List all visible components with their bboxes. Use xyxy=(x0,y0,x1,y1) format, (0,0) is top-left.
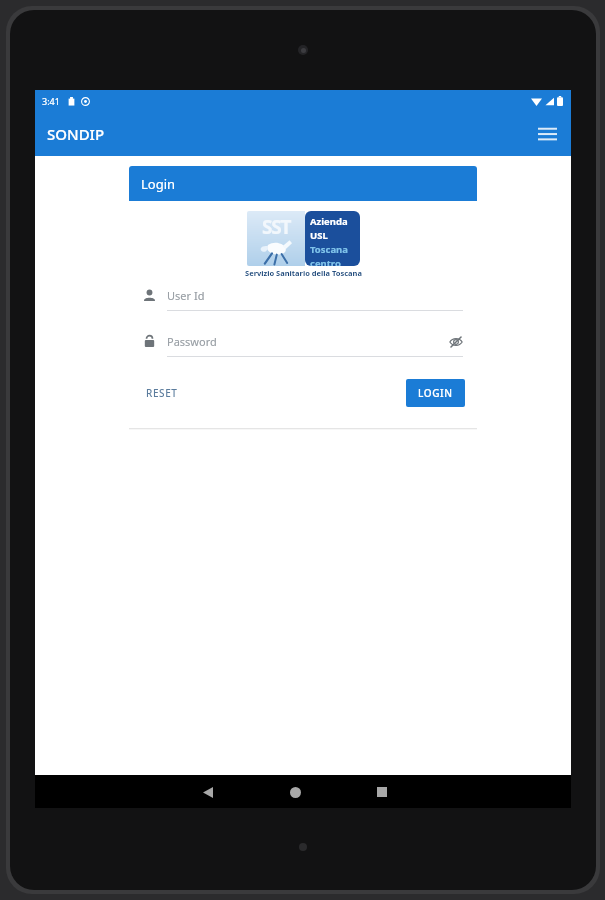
staticText: Password xyxy=(167,334,217,349)
button[interactable]: LOGIN xyxy=(406,379,465,407)
button[interactable]: Recent apps xyxy=(369,779,395,805)
staticText: RESET xyxy=(146,386,178,400)
staticText: SONDIP xyxy=(47,124,105,144)
button[interactable]: SONDIP xyxy=(43,120,109,148)
button[interactable]: RESET xyxy=(143,381,181,405)
staticText: Toscana xyxy=(310,243,348,256)
staticText: USL xyxy=(310,229,328,242)
button[interactable]: Menu xyxy=(533,119,562,148)
button[interactable]: Home xyxy=(282,779,308,805)
staticText: SST xyxy=(262,214,291,240)
staticText: LOGIN xyxy=(418,386,453,400)
staticText: Azienda xyxy=(310,215,348,228)
button[interactable]: Password xyxy=(143,334,463,357)
staticText: User Id xyxy=(167,288,205,303)
button[interactable]: Back xyxy=(195,779,221,805)
button[interactable]: User Id xyxy=(143,288,463,311)
staticText: 3:41 xyxy=(42,95,60,107)
staticText: Login xyxy=(141,175,176,193)
staticText: Servizio Sanitario della Toscana xyxy=(245,268,362,278)
button[interactable]: Show password xyxy=(449,335,463,349)
staticText: centro xyxy=(310,257,341,266)
